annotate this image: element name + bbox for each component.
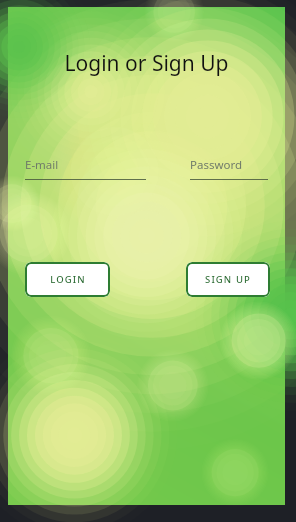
button[interactable]: LOGIN [25, 262, 110, 297]
staticText: E-mail [25, 157, 59, 173]
button[interactable]: SIGN UP [186, 262, 270, 297]
staticText: Login or Sign Up [8, 49, 285, 78]
staticText: Password [190, 157, 243, 173]
staticText: LOGIN [50, 273, 86, 286]
button[interactable]: Password [190, 157, 268, 180]
staticText: SIGN UP [205, 273, 251, 286]
button[interactable]: E-mail [25, 157, 146, 180]
